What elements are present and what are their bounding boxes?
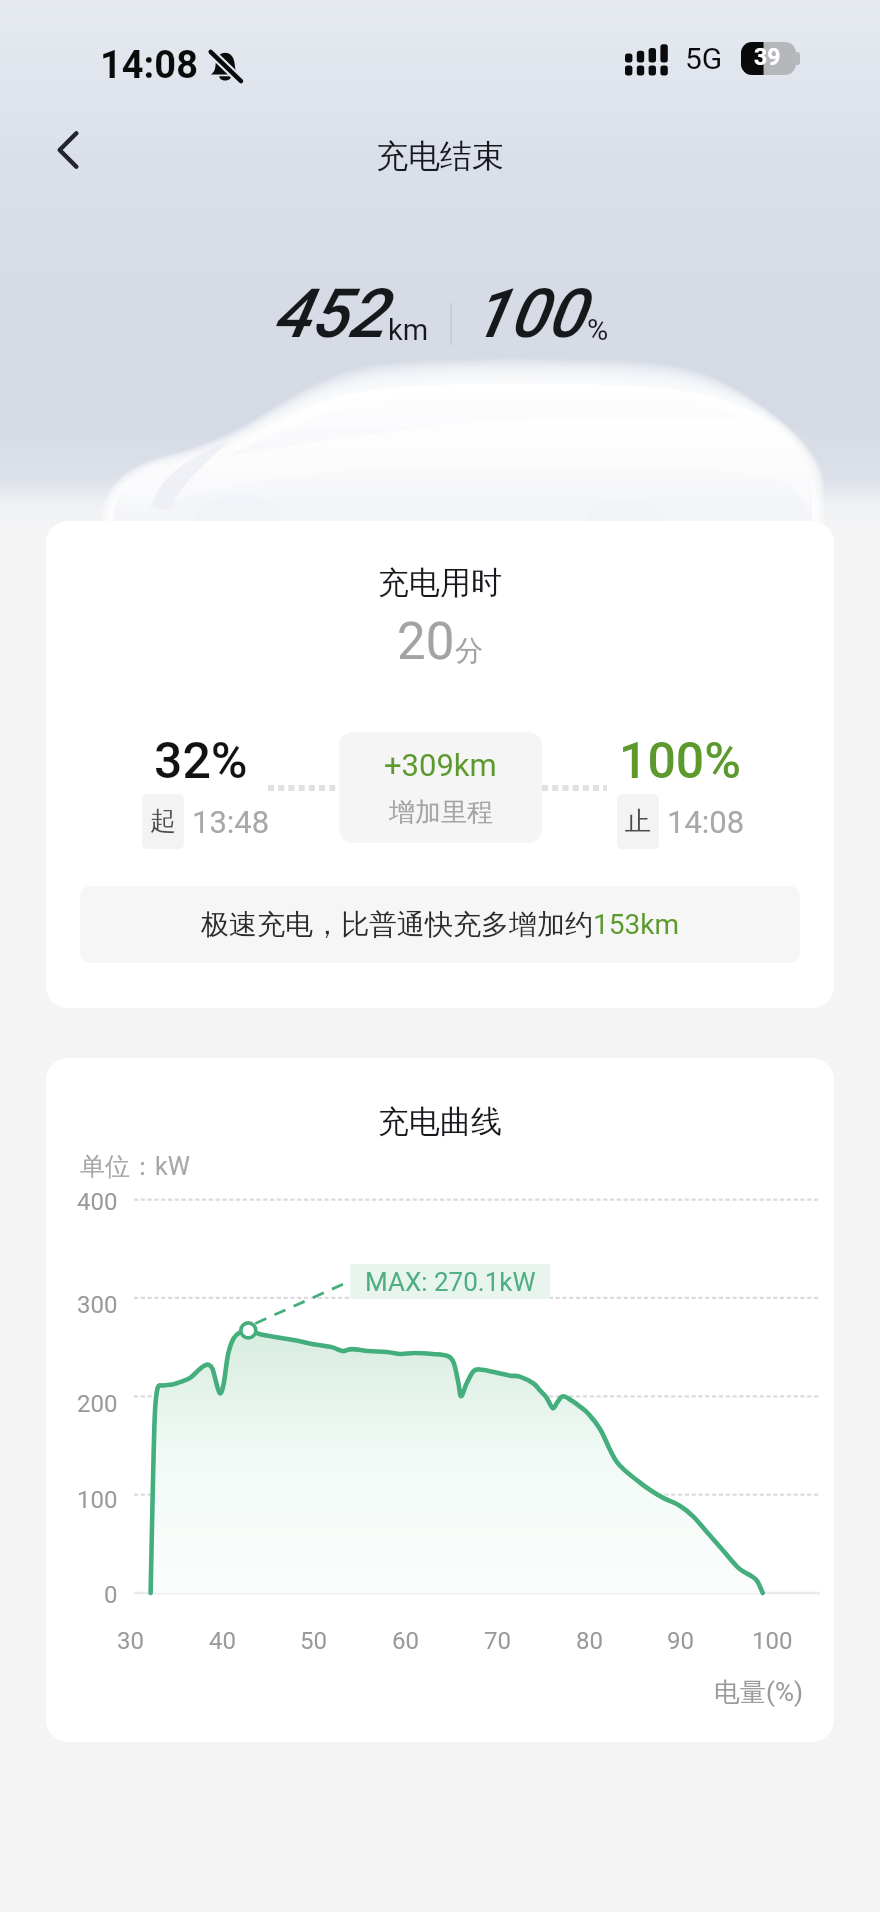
staticText: 单位：kW <box>80 1151 190 1182</box>
staticText: % <box>587 313 609 347</box>
button[interactable]: Back <box>28 110 108 190</box>
staticText: 400 <box>77 1188 118 1216</box>
staticText: 14:08 <box>667 804 745 840</box>
staticText: 0 <box>104 1581 118 1609</box>
staticText: 充电结束 <box>376 136 504 176</box>
staticText: 90 <box>667 1627 694 1655</box>
staticText: +309km <box>384 747 497 783</box>
staticText: 40 <box>209 1627 236 1655</box>
staticText: 100% <box>619 732 741 791</box>
staticText: 充电曲线 <box>378 1102 502 1141</box>
staticText: 30 <box>117 1627 144 1655</box>
staticText: 14:08 <box>100 43 198 88</box>
staticText: km <box>388 313 429 347</box>
staticText: 70 <box>484 1627 511 1655</box>
staticText: 起 <box>150 805 176 838</box>
staticText: 80 <box>576 1627 603 1655</box>
staticText: 100 <box>77 1486 118 1514</box>
staticText: 增加里程 <box>389 796 493 829</box>
staticText: 300 <box>77 1291 118 1319</box>
staticText: 100 <box>472 274 585 354</box>
staticText: 60 <box>392 1627 419 1655</box>
staticText: 153km <box>593 908 679 941</box>
staticText: 200 <box>77 1390 118 1418</box>
staticText: 充电用时 <box>378 563 502 602</box>
staticText: 13:48 <box>192 804 270 840</box>
staticText: 452 <box>273 274 386 354</box>
staticText: 20 <box>397 612 455 672</box>
staticText: MAX: 270.1kW <box>365 1267 536 1297</box>
staticText: 39 <box>754 44 781 71</box>
staticText: 32% <box>154 732 248 791</box>
staticText: 电量(%) <box>714 1676 803 1709</box>
staticText: 5G <box>685 41 723 76</box>
staticText: 分 <box>455 633 483 668</box>
staticText: 止 <box>625 805 651 838</box>
staticText: 极速充电，比普通快充多增加约 <box>201 907 593 942</box>
staticText: 100 <box>752 1627 793 1655</box>
staticText: 50 <box>300 1627 327 1655</box>
